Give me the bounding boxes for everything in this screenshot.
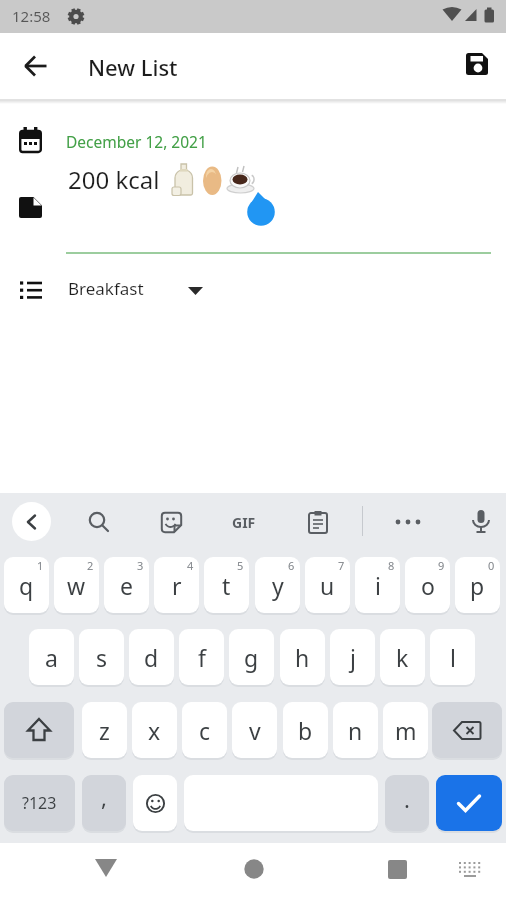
staticText: p bbox=[470, 570, 485, 601]
staticText: 12:58 bbox=[12, 6, 51, 26]
staticText: j bbox=[350, 642, 356, 673]
staticText: x bbox=[148, 715, 161, 746]
staticText: o bbox=[421, 570, 435, 601]
staticText: r bbox=[172, 570, 182, 601]
button[interactable] bbox=[232, 847, 276, 891]
button[interactable]: t bbox=[204, 557, 249, 613]
staticText: 4 bbox=[187, 558, 194, 573]
staticText: z bbox=[99, 715, 110, 746]
button[interactable] bbox=[133, 775, 177, 831]
button[interactable]: v bbox=[232, 702, 277, 758]
staticText: h bbox=[295, 642, 310, 673]
staticText: , bbox=[101, 782, 107, 812]
staticText: u bbox=[320, 570, 335, 601]
button[interactable] bbox=[4, 702, 74, 758]
button[interactable]: p bbox=[455, 557, 500, 613]
button[interactable]: m bbox=[383, 702, 428, 758]
button[interactable] bbox=[77, 500, 121, 544]
staticText: g bbox=[244, 642, 259, 673]
button[interactable]: , bbox=[82, 775, 126, 831]
staticText: 6 bbox=[288, 558, 295, 573]
staticText: 8 bbox=[388, 558, 395, 573]
staticText: Breakfast bbox=[68, 277, 144, 300]
staticText: q bbox=[19, 570, 34, 601]
button[interactable]: k bbox=[380, 629, 425, 685]
button[interactable]: a bbox=[29, 629, 74, 685]
button[interactable]: GIF bbox=[222, 500, 266, 544]
button[interactable] bbox=[432, 702, 502, 758]
button[interactable]: l bbox=[430, 629, 475, 685]
button[interactable] bbox=[84, 846, 128, 890]
staticText: 2 bbox=[87, 558, 94, 573]
button[interactable] bbox=[375, 847, 419, 891]
button[interactable] bbox=[454, 41, 500, 87]
staticText: y bbox=[272, 570, 284, 601]
staticText: d bbox=[144, 642, 159, 673]
staticText: k bbox=[396, 642, 409, 673]
button[interactable]: Breakfast bbox=[60, 274, 210, 302]
button[interactable]: s bbox=[79, 629, 124, 685]
staticText: w bbox=[67, 570, 86, 601]
button[interactable]: j bbox=[330, 629, 375, 685]
staticText: 0 bbox=[488, 558, 495, 573]
button[interactable]: 200 kcal bbox=[62, 160, 282, 200]
staticText: . bbox=[404, 784, 410, 814]
staticText: ?123 bbox=[22, 792, 57, 814]
staticText: 3 bbox=[137, 558, 144, 573]
staticText: s bbox=[96, 642, 108, 673]
staticText: GIF bbox=[232, 513, 256, 532]
button[interactable]: d bbox=[129, 629, 174, 685]
button[interactable] bbox=[12, 502, 51, 541]
staticText: 9 bbox=[438, 558, 445, 573]
staticText: c bbox=[199, 715, 211, 746]
button[interactable]: q bbox=[4, 557, 49, 613]
button[interactable]: y bbox=[255, 557, 300, 613]
staticText: New List bbox=[88, 52, 178, 82]
button[interactable]: h bbox=[280, 629, 325, 685]
button[interactable]: w bbox=[54, 557, 99, 613]
staticText: l bbox=[450, 642, 456, 673]
staticText: n bbox=[348, 715, 363, 746]
button[interactable] bbox=[386, 500, 430, 544]
staticText: i bbox=[375, 570, 381, 601]
button[interactable]: i bbox=[355, 557, 400, 613]
staticText: t bbox=[222, 570, 231, 601]
staticText: 5 bbox=[237, 558, 244, 573]
button[interactable] bbox=[149, 500, 193, 544]
button[interactable]: ?123 bbox=[4, 775, 75, 831]
staticText: m bbox=[395, 715, 417, 746]
staticText: a bbox=[45, 642, 58, 673]
button[interactable] bbox=[459, 500, 503, 544]
button[interactable] bbox=[436, 775, 502, 831]
button[interactable]: u bbox=[305, 557, 350, 613]
button[interactable]: o bbox=[405, 557, 450, 613]
button[interactable]: . bbox=[385, 775, 429, 831]
button[interactable]: z bbox=[82, 702, 127, 758]
staticText: 7 bbox=[338, 558, 345, 573]
button[interactable]: x bbox=[132, 702, 177, 758]
staticText: December 12, 2021 bbox=[66, 131, 207, 152]
button[interactable]: n bbox=[333, 702, 378, 758]
button[interactable]: b bbox=[283, 702, 328, 758]
staticText: b bbox=[298, 715, 313, 746]
button[interactable]: g bbox=[229, 629, 274, 685]
button[interactable] bbox=[448, 847, 492, 891]
button[interactable]: r bbox=[154, 557, 199, 613]
button[interactable]: December 12, 2021 bbox=[60, 128, 260, 154]
staticText: 200 kcal bbox=[68, 163, 160, 196]
button[interactable] bbox=[12, 42, 60, 90]
staticText: f bbox=[198, 642, 206, 673]
button[interactable]: f bbox=[179, 629, 224, 685]
button[interactable] bbox=[296, 500, 340, 544]
staticText: v bbox=[249, 715, 261, 746]
button[interactable]: e bbox=[104, 557, 149, 613]
staticText: e bbox=[120, 570, 133, 601]
staticText: 1 bbox=[37, 558, 44, 573]
button[interactable]: c bbox=[182, 702, 227, 758]
